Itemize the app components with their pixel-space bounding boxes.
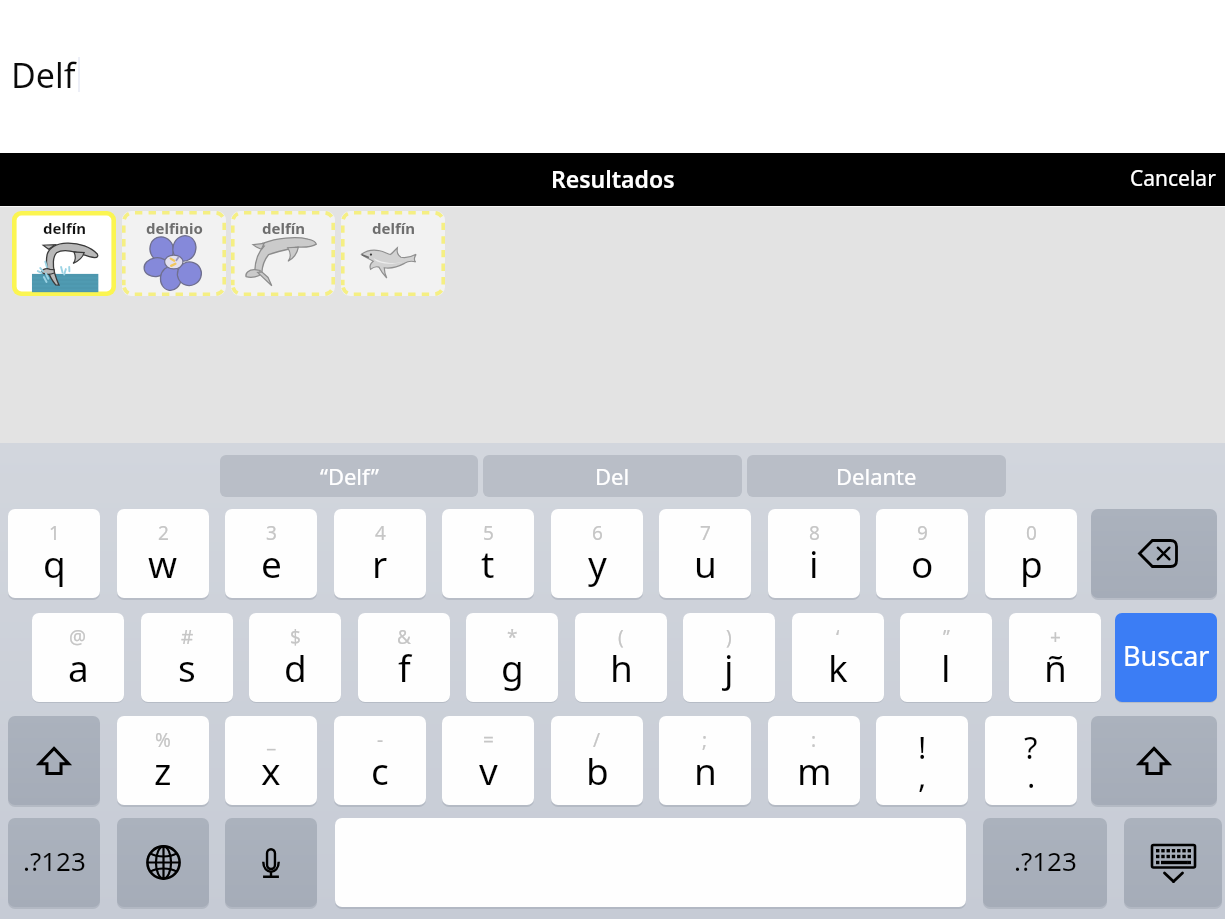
button[interactable]: Del [483, 455, 742, 497]
staticText: 2 [158, 520, 169, 546]
button[interactable]: - [334, 716, 426, 805]
staticText: @ [69, 624, 87, 650]
staticText: ‘ [836, 624, 840, 650]
staticText: Del [595, 461, 630, 491]
staticText: m [797, 745, 832, 795]
staticText: Cancelar [1130, 164, 1216, 193]
button[interactable]: + [1009, 613, 1101, 702]
button[interactable]: delfín [12, 211, 116, 296]
button[interactable]: / [551, 716, 643, 805]
staticText: = [483, 727, 494, 753]
staticText: q [43, 538, 66, 588]
button[interactable]: ) [683, 613, 775, 702]
button[interactable]: 6 [551, 509, 643, 598]
staticText: ? [1024, 726, 1038, 768]
staticText: $ [290, 624, 301, 650]
staticText: u [694, 538, 717, 588]
button[interactable]: ‘ [792, 613, 884, 702]
staticText: “Delf” [320, 461, 379, 491]
button[interactable]: # [141, 613, 233, 702]
staticText: ” [943, 624, 950, 650]
staticText: b [586, 745, 609, 795]
button[interactable]: 3 [225, 509, 317, 598]
staticText: s [178, 642, 196, 692]
staticText: , [918, 755, 927, 797]
staticText: 7 [700, 520, 711, 546]
button[interactable]: Backspace [1091, 509, 1217, 598]
staticText: ; [702, 727, 708, 753]
staticText: j [724, 642, 734, 692]
staticText: - [377, 727, 384, 753]
staticText: Delf [11, 52, 76, 98]
button[interactable]: * [466, 613, 558, 702]
button[interactable]: Shift [1091, 716, 1217, 805]
button[interactable]: Hide keyboard [1124, 818, 1222, 907]
staticText: i [809, 538, 819, 588]
button[interactable]: ! [876, 716, 968, 805]
button[interactable]: delfín [341, 211, 445, 296]
staticText: * [507, 624, 518, 650]
staticText: 9 [917, 520, 928, 546]
button[interactable]: 1 [8, 509, 100, 598]
staticText: 8 [809, 520, 820, 546]
staticText: v [479, 745, 498, 795]
button[interactable]: 5 [442, 509, 534, 598]
button[interactable]: : [768, 716, 860, 805]
button[interactable]: ; [659, 716, 751, 805]
button[interactable]: ” [900, 613, 992, 702]
button[interactable]: & [358, 613, 450, 702]
staticText: . [1027, 755, 1036, 797]
button[interactable]: delfinio [122, 211, 226, 296]
staticText: ( [618, 624, 624, 650]
staticText: g [501, 642, 524, 692]
staticText: z [154, 745, 172, 795]
staticText: _ [267, 727, 276, 753]
button[interactable]: 9 [876, 509, 968, 598]
staticText: Resultados [551, 163, 675, 194]
button[interactable]: 8 [768, 509, 860, 598]
staticText: ) [726, 624, 732, 650]
button[interactable]: “Delf” [220, 455, 478, 497]
staticText: x [261, 745, 281, 795]
button[interactable]: $ [249, 613, 341, 702]
staticText: Delante [836, 461, 917, 491]
staticText: d [284, 642, 307, 692]
button[interactable]: = [442, 716, 534, 805]
staticText: h [610, 642, 633, 692]
button[interactable]: .?123 [8, 818, 100, 907]
staticText: 4 [375, 520, 386, 546]
button[interactable]: 0 [985, 509, 1077, 598]
button[interactable]: 2 [117, 509, 209, 598]
staticText: w [148, 538, 178, 588]
staticText: t [481, 538, 495, 588]
button[interactable]: % [117, 716, 209, 805]
staticText: delfín [262, 218, 305, 238]
button[interactable]: Delante [747, 455, 1006, 497]
staticText: n [694, 745, 717, 795]
staticText: e [261, 538, 282, 588]
staticText: r [372, 538, 388, 588]
staticText: l [941, 642, 951, 692]
staticText: 5 [483, 520, 494, 546]
staticText: 1 [49, 520, 60, 546]
button[interactable]: Dictate [225, 818, 317, 907]
button[interactable]: ? [985, 716, 1077, 805]
button[interactable]: @ [32, 613, 124, 702]
staticText: delfinio [146, 218, 203, 238]
staticText: # [181, 624, 194, 650]
button[interactable]: 4 [334, 509, 426, 598]
button[interactable]: _ [225, 716, 317, 805]
button[interactable]: Shift [8, 716, 100, 805]
button[interactable]: Cancelar [1121, 154, 1225, 203]
button[interactable]: Change keyboard [117, 818, 209, 907]
staticText: a [68, 642, 89, 692]
button[interactable]: Buscar [1115, 613, 1217, 702]
staticText: 6 [592, 520, 603, 546]
staticText: k [828, 642, 848, 692]
button[interactable]: delfín [231, 211, 335, 296]
button[interactable]: ( [575, 613, 667, 702]
button[interactable]: 7 [659, 509, 751, 598]
staticText: .?123 [23, 843, 86, 878]
button[interactable]: .?123 [983, 818, 1107, 907]
